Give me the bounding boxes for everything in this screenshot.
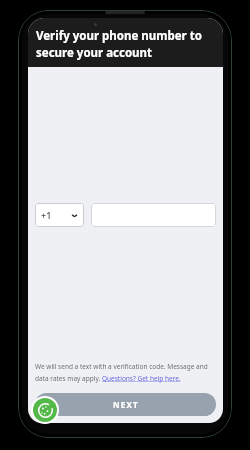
button[interactable]: NEXT — [35, 393, 216, 416]
button[interactable]: +1 — [35, 203, 84, 227]
button[interactable]: Questions? Get help here. — [102, 374, 181, 383]
staticText: Verify your phone number to — [36, 28, 202, 44]
staticText: secure your account — [36, 45, 153, 61]
staticText: We will send a text with a verification … — [35, 362, 208, 371]
staticText: NEXT — [113, 399, 139, 410]
staticText: +1 — [41, 209, 52, 221]
staticText: Questions? Get help here. — [102, 374, 181, 383]
button[interactable]: Cookie preferences — [33, 398, 57, 422]
staticText: data rates may apply. — [35, 374, 102, 383]
button[interactable] — [91, 203, 216, 227]
